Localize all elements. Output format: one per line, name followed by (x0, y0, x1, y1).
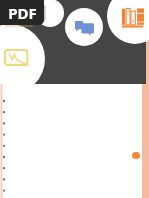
button[interactable]: Current page marker (132, 152, 140, 159)
button[interactable]: Messages (65, 8, 103, 46)
button[interactable]: PDF (0, 0, 44, 25)
button[interactable]: Documents (36, 0, 64, 27)
button[interactable]: Library (107, 0, 149, 44)
button[interactable]: Sign document (0, 24, 45, 94)
staticText: PDF (8, 3, 37, 23)
